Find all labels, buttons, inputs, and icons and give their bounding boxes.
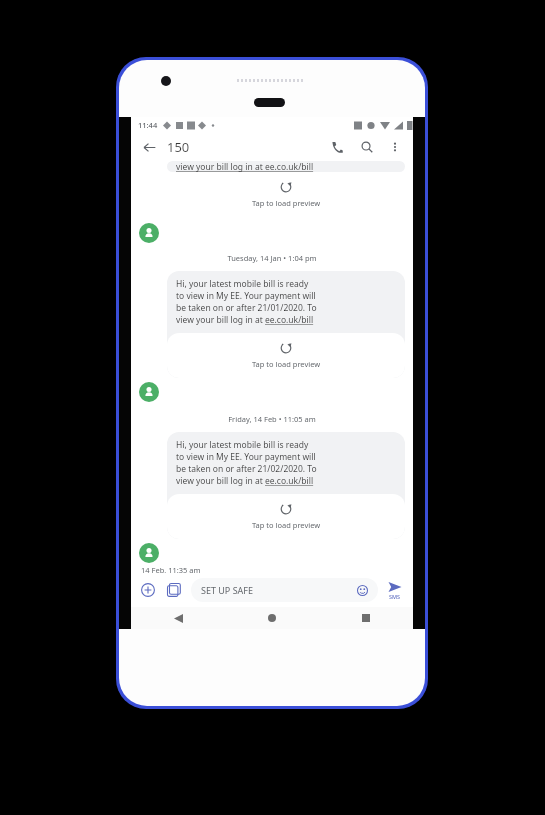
- button[interactable]: Hi, your latest mobile bill is ready: [167, 432, 405, 539]
- button[interactable]: Tap to load preview: [167, 172, 405, 217]
- staticText: SMS: [389, 593, 401, 600]
- staticText: Hi, your latest mobile bill is ready: [176, 278, 309, 290]
- staticText: SET UP SAFE: [201, 584, 254, 596]
- staticText: Hi, your latest mobile bill is ready: [176, 439, 309, 451]
- button[interactable]: Contact avatar: [139, 382, 159, 402]
- button[interactable]: Search: [357, 137, 377, 157]
- button[interactable]: view your bill log in at ee.co.uk/bill: [167, 161, 405, 172]
- staticText: Friday, 14 Feb • 11:05 am: [228, 414, 316, 424]
- button[interactable]: SET UP SAFE: [191, 578, 378, 602]
- button[interactable]: More options: [385, 137, 405, 157]
- button[interactable]: Gallery: [164, 580, 184, 600]
- button[interactable]: Add attachment: [138, 580, 158, 600]
- button[interactable]: Send SMS: [384, 581, 406, 600]
- staticText: 11:44: [138, 120, 158, 130]
- staticText: 150: [167, 138, 190, 156]
- button[interactable]: Back: [139, 137, 159, 157]
- button[interactable]: Recent apps: [319, 607, 413, 629]
- staticText: Tap to load preview: [252, 520, 321, 530]
- button[interactable]: Contact avatar: [139, 543, 159, 563]
- staticText: 14 Feb, 11:35 am: [141, 565, 201, 573]
- staticText: view your bill log in at: [176, 475, 265, 487]
- staticText: be taken on or after 21/02/2020. To: [176, 463, 317, 475]
- staticText: view your bill log in at: [176, 314, 265, 326]
- staticText: to view in My EE. Your payment will: [176, 290, 316, 302]
- button[interactable]: Tap to load preview: [167, 333, 405, 378]
- button[interactable]: Back: [131, 607, 225, 629]
- staticText: Tap to load preview: [252, 359, 321, 369]
- staticText: be taken on or after 21/01/2020. To: [176, 302, 317, 314]
- button[interactable]: Home: [225, 607, 319, 629]
- button[interactable]: Contact avatar: [139, 223, 159, 243]
- staticText: view your bill log in at ee.co.uk/bill: [176, 161, 314, 172]
- staticText: Tuesday, 14 Jan • 1:04 pm: [227, 253, 317, 263]
- staticText: to view in My EE. Your payment will: [176, 451, 316, 463]
- button[interactable]: Tap to load preview: [167, 494, 405, 539]
- staticText: ee.co.uk/bill: [265, 314, 314, 326]
- button[interactable]: Hi, your latest mobile bill is ready: [167, 271, 405, 378]
- staticText: Tap to load preview: [252, 198, 321, 208]
- button[interactable]: Call: [327, 137, 347, 157]
- staticText: ee.co.uk/bill: [265, 475, 314, 487]
